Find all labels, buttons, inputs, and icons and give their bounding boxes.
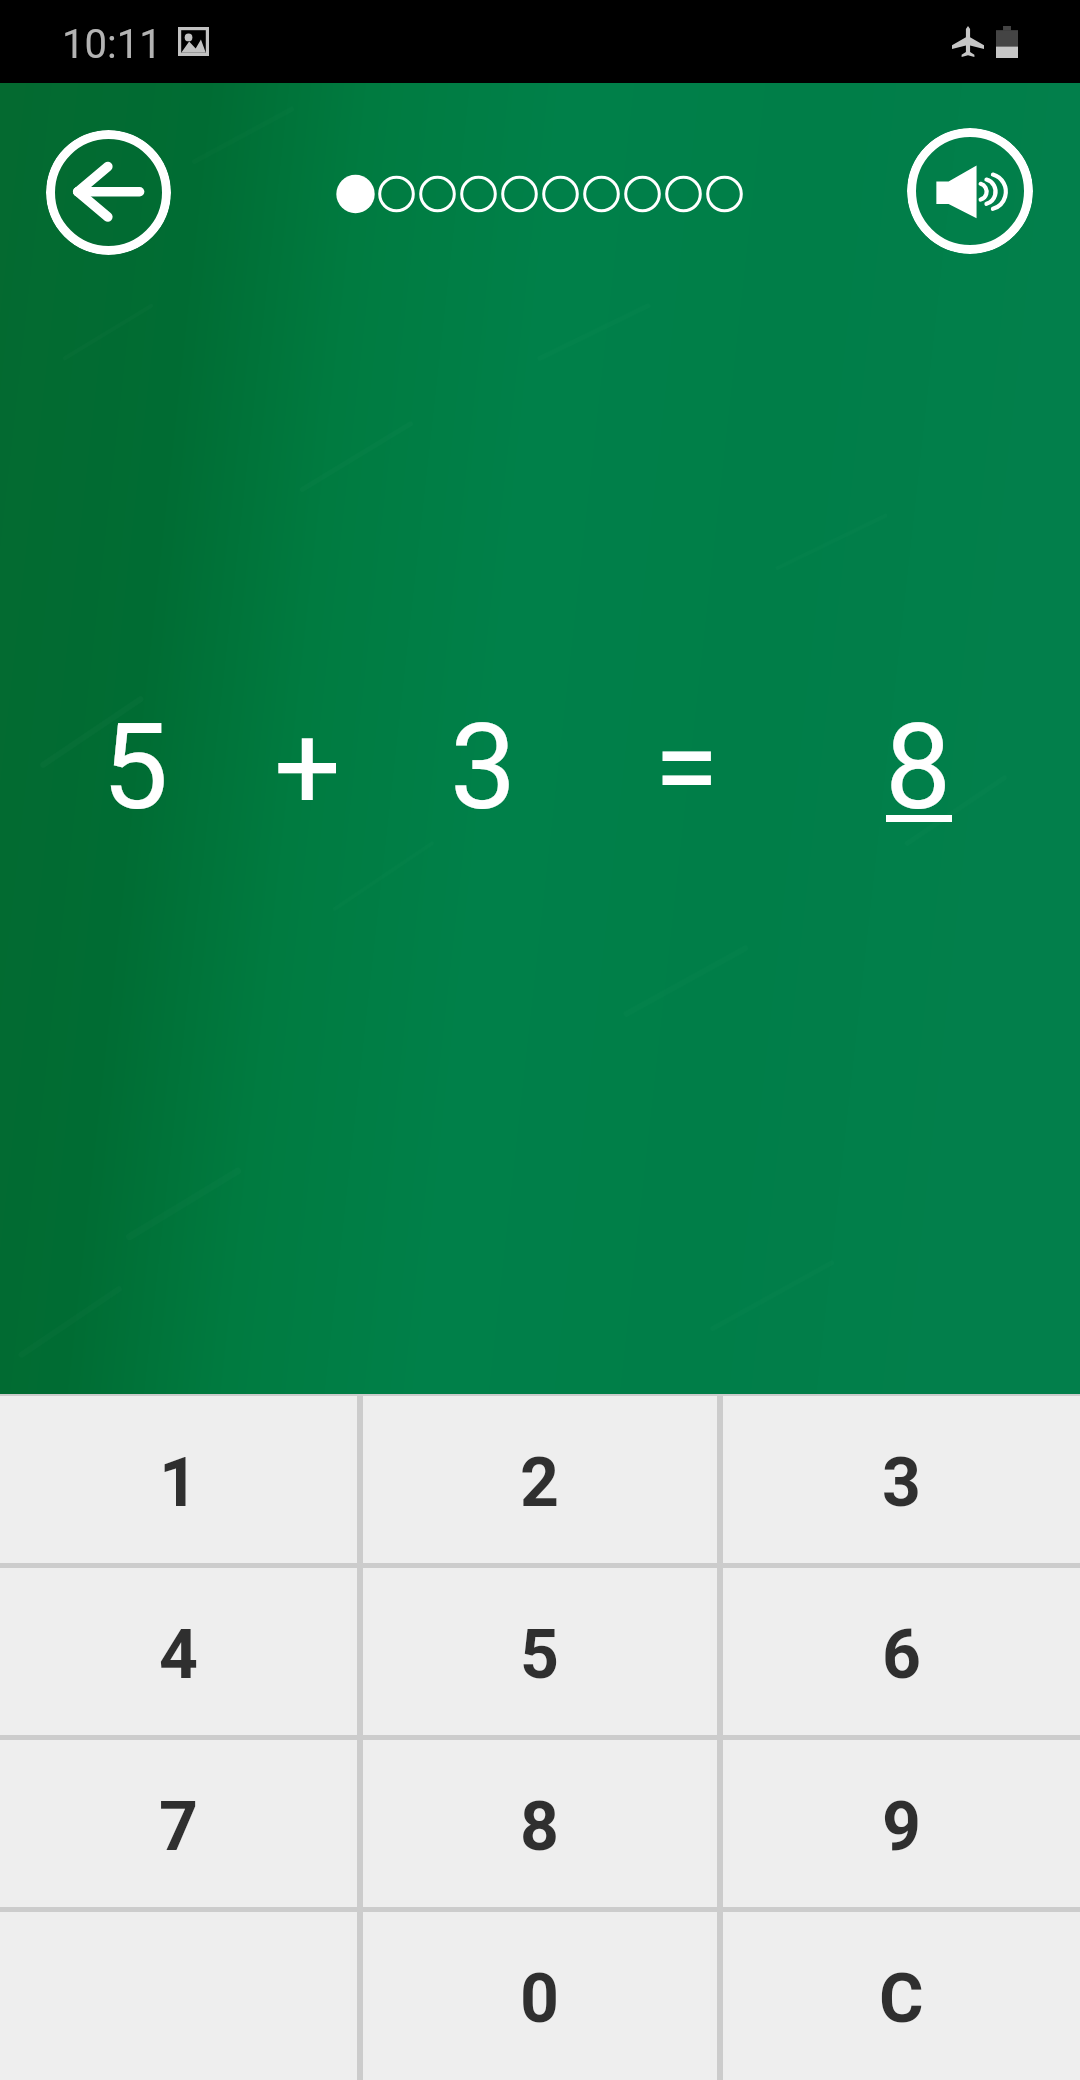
button[interactable]: Sound xyxy=(907,128,1033,254)
staticText: = xyxy=(654,699,719,837)
button[interactable]: 9 xyxy=(723,1740,1080,1907)
staticText: 6 xyxy=(882,1615,922,1695)
button[interactable]: 4 xyxy=(0,1568,357,1735)
staticText: 4 xyxy=(159,1615,199,1695)
button[interactable]: 0 xyxy=(363,1912,717,2080)
staticText: + xyxy=(274,699,341,837)
staticText: 3 xyxy=(882,1443,922,1523)
staticText: 5 xyxy=(520,1615,560,1695)
button[interactable]: 8 xyxy=(363,1740,717,1907)
staticText: 8 xyxy=(885,699,952,837)
button[interactable]: 1 xyxy=(0,1396,357,1563)
button[interactable]: 5 xyxy=(363,1568,717,1735)
button[interactable]: C xyxy=(723,1912,1080,2080)
staticText: C xyxy=(879,1959,924,2039)
staticText: 10:11 xyxy=(62,21,162,68)
button[interactable]: 3 xyxy=(723,1396,1080,1563)
staticText: 9 xyxy=(882,1787,922,1867)
staticText: 5 xyxy=(102,699,169,837)
staticText: 3 xyxy=(450,699,517,837)
button[interactable]: Back xyxy=(46,130,171,255)
staticText: 8 xyxy=(520,1787,560,1867)
button[interactable]: 2 xyxy=(363,1396,717,1563)
button[interactable]: 7 xyxy=(0,1740,357,1907)
staticText: 2 xyxy=(520,1443,560,1523)
staticText: 0 xyxy=(520,1959,560,2039)
button[interactable]: 6 xyxy=(723,1568,1080,1735)
staticText: 7 xyxy=(159,1787,199,1867)
staticText: 1 xyxy=(159,1443,199,1523)
